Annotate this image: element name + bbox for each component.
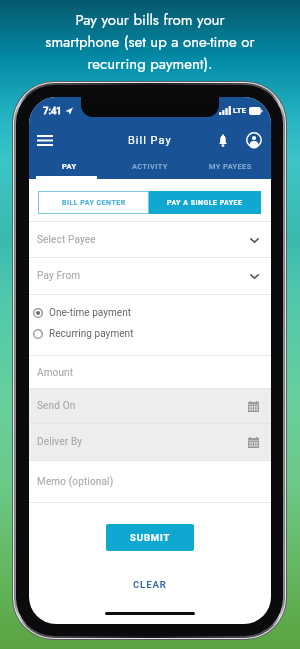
staticText: MY PAYEES <box>209 162 252 171</box>
button[interactable]: Amount <box>29 356 271 389</box>
button[interactable]: Notifications <box>212 123 234 157</box>
button[interactable]: PAY A SINGLE PAYEE <box>149 191 261 214</box>
staticText: Bill Pay <box>128 134 172 147</box>
button[interactable]: ACTIVITY <box>109 157 190 179</box>
staticText: SUBMIT <box>130 532 171 543</box>
button[interactable]: Memo (optional) <box>29 461 271 502</box>
staticText: 7:41 <box>43 105 62 116</box>
button[interactable]: BILL PAY CENTER <box>38 191 149 214</box>
button[interactable]: Pay From <box>29 258 271 294</box>
staticText: Recurring payment <box>49 328 134 340</box>
button[interactable]: Send On <box>29 389 271 423</box>
staticText: PAY A SINGLE PAYEE <box>167 199 243 207</box>
button[interactable]: Profile <box>243 123 265 157</box>
button[interactable]: MY PAYEES <box>190 157 271 179</box>
staticText: Pay From <box>37 270 81 282</box>
staticText: Send On <box>37 400 76 412</box>
staticText: Select Payee <box>37 234 96 246</box>
staticText: CLEAR <box>133 579 167 590</box>
button[interactable]: Open navigation menu <box>33 123 57 157</box>
button[interactable]: SUBMIT <box>106 524 194 551</box>
button[interactable]: Select Payee <box>29 222 271 258</box>
staticText: One-time payment <box>49 307 132 319</box>
button[interactable]: Recurring payment <box>33 326 134 342</box>
button[interactable]: One-time payment <box>33 305 132 321</box>
staticText: BILL PAY CENTER <box>62 199 126 207</box>
button[interactable]: PAY <box>29 157 109 179</box>
staticText: Memo (optional) <box>37 476 114 488</box>
staticText: Pay your bills from your smartphone (set… <box>45 9 255 75</box>
staticText: ACTIVITY <box>132 162 168 171</box>
button[interactable]: Deliver By <box>29 424 271 460</box>
button[interactable]: CLEAR <box>130 574 170 594</box>
staticText: Deliver By <box>37 436 83 448</box>
staticText: PAY <box>62 162 77 171</box>
staticText: LTE <box>233 106 246 115</box>
staticText: Amount <box>37 367 74 379</box>
